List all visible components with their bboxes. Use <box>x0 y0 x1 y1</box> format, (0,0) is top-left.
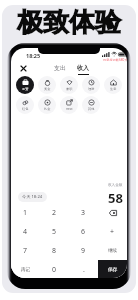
button[interactable]: 礼金 <box>38 96 56 114</box>
staticText: 红包 <box>22 107 29 111</box>
staticText: 生意 <box>110 87 117 91</box>
button[interactable]: 奖金 <box>38 76 56 94</box>
button[interactable]: 再记 <box>11 260 40 278</box>
staticText: 5 <box>52 227 57 237</box>
staticText: 收入金额 <box>108 183 123 188</box>
staticText: 极致体验 <box>17 6 121 39</box>
staticText: 其他 <box>88 107 95 111</box>
button[interactable]: 支出 <box>52 63 68 73</box>
staticText: 今天 18:24 <box>22 194 43 200</box>
button[interactable]: 其他 <box>82 96 100 114</box>
button[interactable]: + <box>98 222 127 241</box>
staticText: 兼职 <box>66 87 73 91</box>
button[interactable]: 3 <box>69 203 98 222</box>
staticText: 8 <box>52 246 57 256</box>
button[interactable]: 6 <box>69 222 98 241</box>
staticText: 58 <box>108 189 123 207</box>
staticText: 0 <box>52 265 57 275</box>
staticText: 已坚持记账680天 <box>103 58 127 62</box>
staticText: 6 <box>81 227 86 237</box>
button[interactable]: 理财 <box>82 76 100 94</box>
button[interactable]: 2 <box>40 203 69 222</box>
other: Delete <box>109 210 117 216</box>
staticText: 再记 <box>21 267 31 273</box>
staticText: 1 <box>23 208 28 218</box>
button[interactable]: 保存 <box>98 260 127 278</box>
button[interactable]: 报销 <box>60 96 78 114</box>
staticText: 9 <box>81 246 86 256</box>
staticText: 礼金 <box>44 107 51 111</box>
staticText: 18:25 <box>26 52 41 59</box>
button[interactable]: 今天 18:24 <box>18 192 47 202</box>
staticText: 3 <box>81 208 86 218</box>
staticText: 继续 <box>108 248 118 254</box>
button[interactable]: 9 <box>69 241 98 260</box>
staticText: + <box>110 227 115 237</box>
button[interactable]: 7 <box>11 241 40 260</box>
button[interactable]: 1 <box>11 203 40 222</box>
button[interactable]: Delete <box>98 203 127 222</box>
staticText: 4 <box>23 227 28 237</box>
staticText: 奖金 <box>44 87 51 91</box>
staticText: 保存 <box>108 267 118 273</box>
staticText: 收入 <box>77 64 89 72</box>
button[interactable]: . <box>69 260 98 278</box>
button[interactable]: 生意 <box>104 76 122 94</box>
button[interactable]: 收入 <box>75 63 91 76</box>
staticText: 支出 <box>54 64 66 72</box>
button[interactable]: 继续 <box>98 241 127 260</box>
staticText: . <box>83 265 85 275</box>
button[interactable]: 8 <box>40 241 69 260</box>
button[interactable]: 兼职 <box>60 76 78 94</box>
staticText: 工资 <box>22 87 29 91</box>
button[interactable]: 0 <box>40 260 69 278</box>
staticText: 理财 <box>88 87 95 91</box>
button[interactable]: 工资 <box>16 76 34 94</box>
button[interactable]: Close <box>16 61 30 75</box>
staticText: 报销 <box>66 107 73 111</box>
button[interactable]: 5 <box>40 222 69 241</box>
staticText: 2 <box>52 208 57 218</box>
button[interactable]: 4 <box>11 222 40 241</box>
button[interactable]: 红包 <box>16 96 34 114</box>
staticText: 7 <box>23 246 28 256</box>
